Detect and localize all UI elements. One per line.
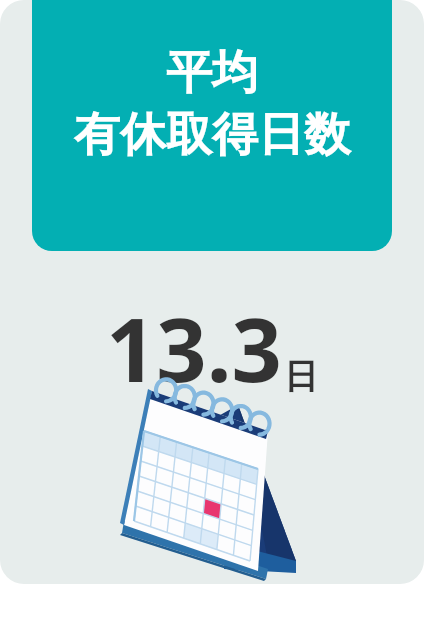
button[interactable]: 平均 [32, 0, 392, 251]
other: Desk calendar illustration [118, 383, 313, 583]
staticText: 13.3 [106, 288, 282, 408]
staticText: 日 [284, 355, 318, 398]
staticText: 有休取得日数 [74, 106, 350, 164]
staticText: 平均 [166, 44, 258, 102]
